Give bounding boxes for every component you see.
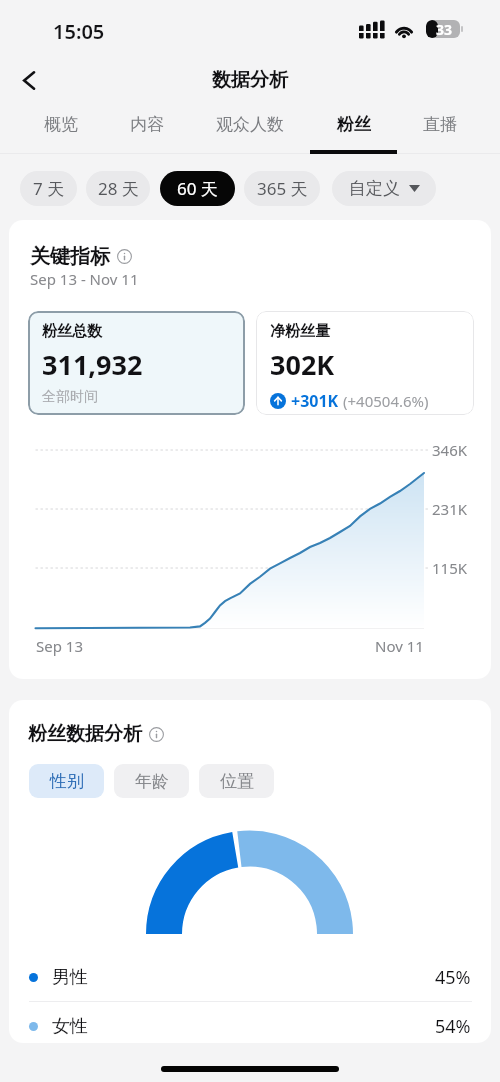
staticText: 自定义 bbox=[349, 178, 400, 199]
button[interactable]: 性别 bbox=[29, 764, 104, 798]
button[interactable]: 粉丝总数 bbox=[28, 311, 245, 415]
button[interactable]: 净粉丝量 bbox=[256, 311, 474, 415]
staticText: 性别 bbox=[50, 771, 84, 792]
staticText: 231K bbox=[432, 499, 468, 519]
staticText: (+40504.6%) bbox=[343, 391, 429, 411]
staticText: 直播 bbox=[423, 114, 457, 135]
staticText: 302K bbox=[270, 346, 335, 383]
staticText: 346K bbox=[432, 440, 468, 460]
staticText: 粉丝数据分析 bbox=[28, 722, 142, 746]
staticText: 男性 bbox=[52, 966, 88, 989]
button[interactable]: 粉丝 bbox=[310, 106, 397, 154]
button[interactable]: 60 天 bbox=[160, 171, 235, 206]
button[interactable]: 直播 bbox=[397, 106, 483, 154]
button[interactable]: 概览 bbox=[18, 106, 104, 154]
staticText: 15:05 bbox=[53, 18, 105, 45]
button[interactable]: 男性 bbox=[9, 953, 491, 1001]
staticText: 28 天 bbox=[98, 177, 139, 200]
button[interactable]: 年龄 bbox=[114, 764, 189, 798]
staticText: 33 bbox=[436, 20, 453, 38]
staticText: 54% bbox=[435, 1014, 471, 1039]
staticText: 关键指标 bbox=[30, 244, 110, 269]
button[interactable]: 365 天 bbox=[244, 171, 320, 206]
button[interactable]: 内容 bbox=[104, 106, 190, 154]
button[interactable]: 28 天 bbox=[86, 171, 150, 206]
staticText: 观众人数 bbox=[216, 114, 284, 135]
staticText: Sep 13 - Nov 11 bbox=[30, 269, 139, 289]
button[interactable]: 位置 bbox=[199, 764, 274, 798]
button[interactable]: 观众人数 bbox=[190, 106, 310, 154]
staticText: 年龄 bbox=[135, 771, 169, 792]
staticText: 7 天 bbox=[33, 177, 65, 200]
staticText: 粉丝总数 bbox=[42, 322, 102, 341]
button[interactable]: Back bbox=[8, 59, 50, 101]
staticText: 净粉丝量 bbox=[270, 322, 330, 341]
staticText: 60 天 bbox=[177, 177, 218, 200]
staticText: Sep 13 bbox=[36, 636, 83, 656]
staticText: Nov 11 bbox=[375, 636, 424, 656]
staticText: +301K bbox=[291, 390, 339, 412]
staticText: 45% bbox=[435, 965, 471, 990]
staticText: 位置 bbox=[220, 771, 254, 792]
staticText: 数据分析 bbox=[212, 68, 288, 92]
staticText: 粉丝 bbox=[337, 114, 371, 135]
staticText: 全部时间 bbox=[42, 388, 98, 406]
staticText: 115K bbox=[432, 558, 468, 578]
staticText: 311,932 bbox=[42, 346, 143, 383]
staticText: 内容 bbox=[130, 114, 164, 135]
staticText: 女性 bbox=[52, 1015, 88, 1038]
button[interactable]: 自定义 bbox=[332, 171, 436, 206]
button[interactable]: 女性 bbox=[9, 1002, 491, 1043]
staticText: 365 天 bbox=[257, 177, 308, 200]
button[interactable]: 7 天 bbox=[20, 171, 77, 206]
staticText: 概览 bbox=[44, 114, 78, 135]
